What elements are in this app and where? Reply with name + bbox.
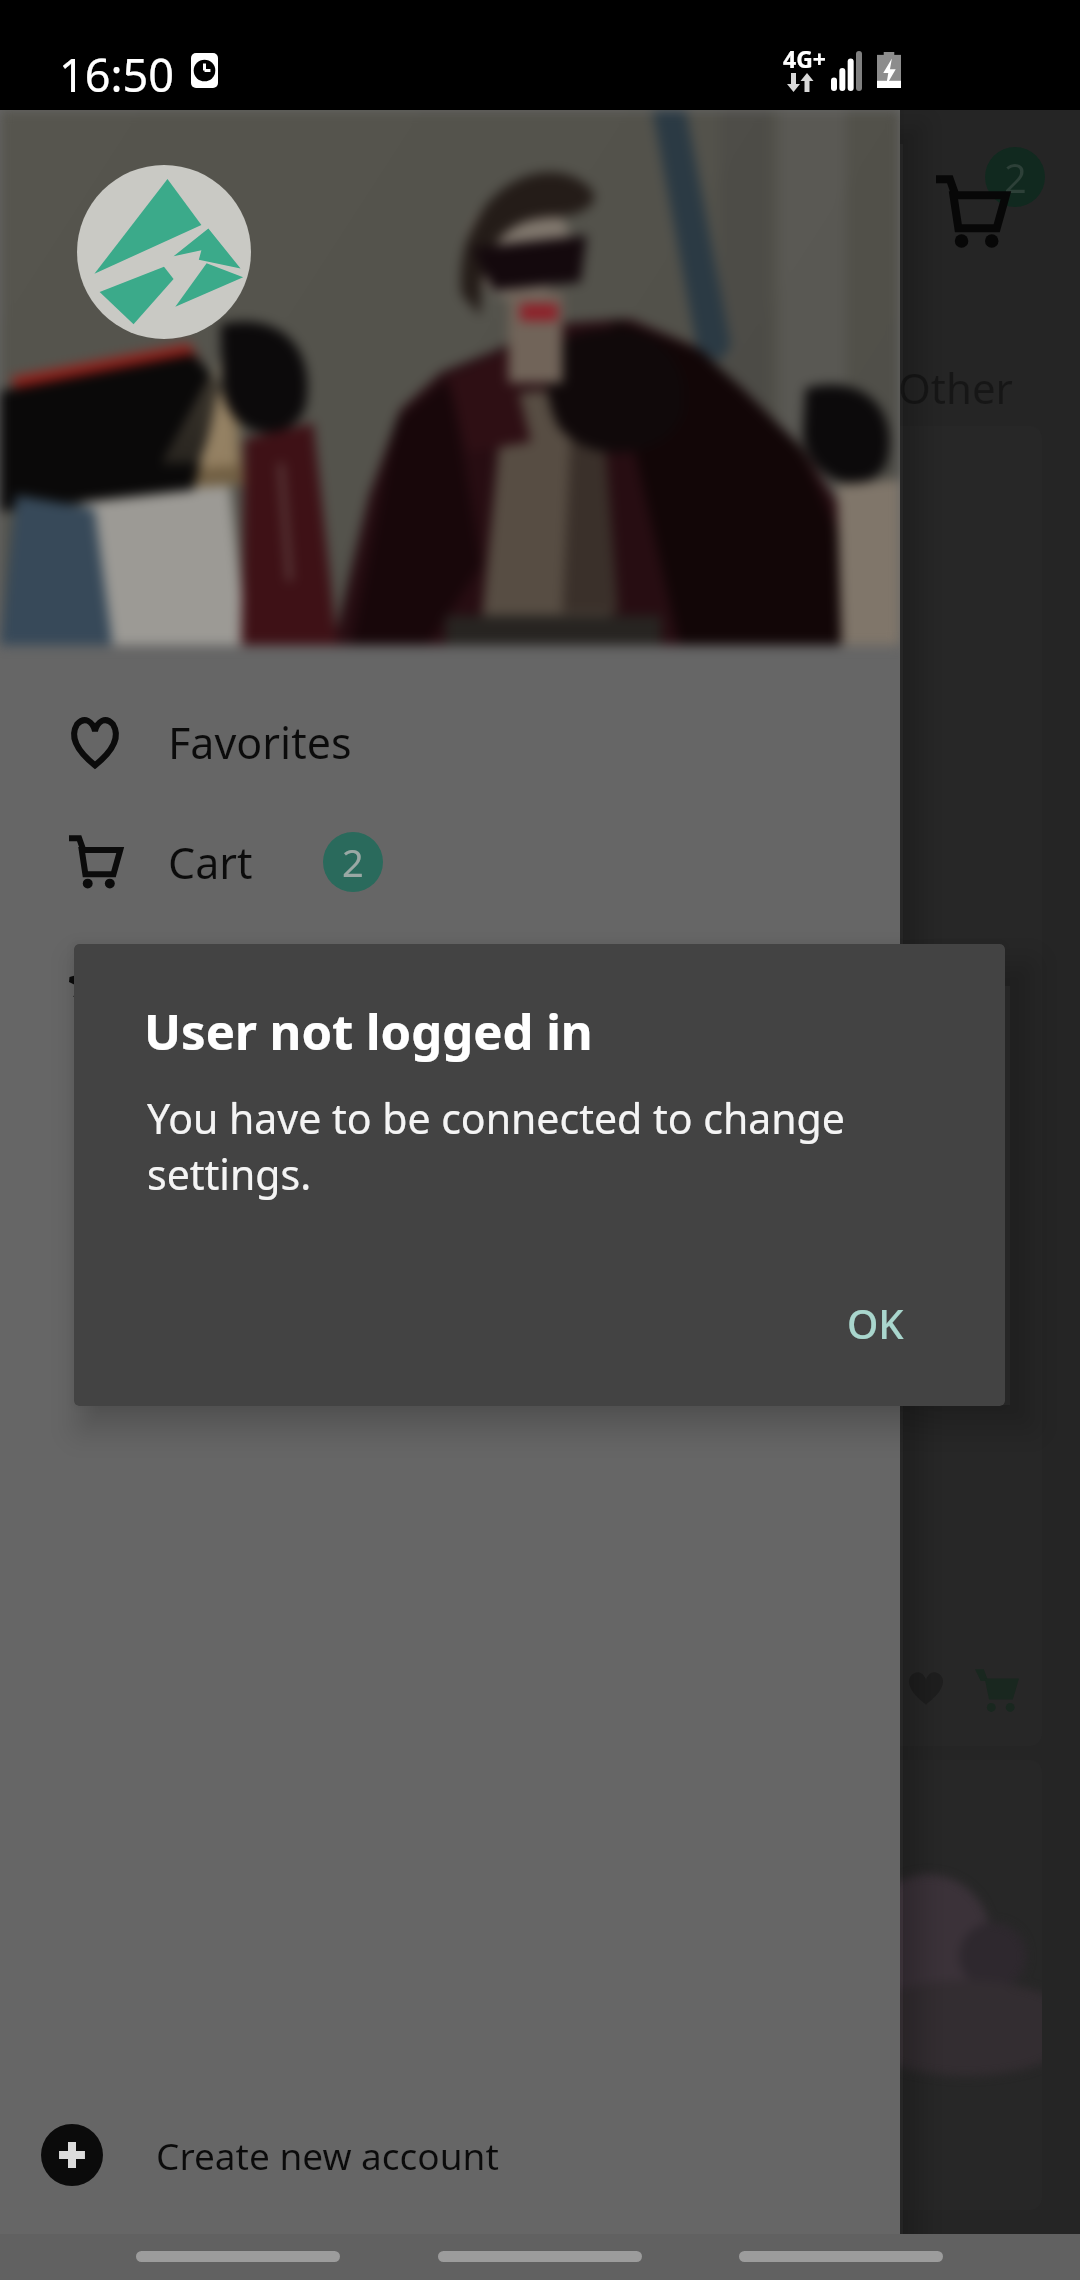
staticText: User not logged in: [144, 998, 593, 1065]
staticText: 16:50: [59, 44, 175, 105]
button[interactable]: Back: [136, 2251, 340, 2262]
button[interactable]: OK: [808, 1278, 943, 1368]
button[interactable]: Create new account: [0, 2095, 900, 2215]
staticText: 4G+: [783, 43, 826, 74]
staticText: Favorites: [168, 713, 352, 772]
button[interactable]: Cart: [936, 176, 1007, 247]
button[interactable]: Favorites: [0, 682, 900, 802]
staticText: OK: [847, 1296, 904, 1350]
button[interactable]: Settings: [0, 922, 900, 1042]
staticText: 2: [342, 836, 364, 888]
staticText: You have to be connected to change setti…: [147, 1090, 845, 1202]
button[interactable]: Home: [438, 2251, 642, 2262]
button[interactable]: Cart: [0, 802, 900, 922]
button[interactable]: Recents: [739, 2251, 943, 2262]
staticText: Other: [898, 359, 1013, 416]
staticText: 2: [1004, 150, 1027, 204]
staticText: Cart: [168, 833, 253, 892]
staticText: Create new account: [156, 2130, 499, 2180]
